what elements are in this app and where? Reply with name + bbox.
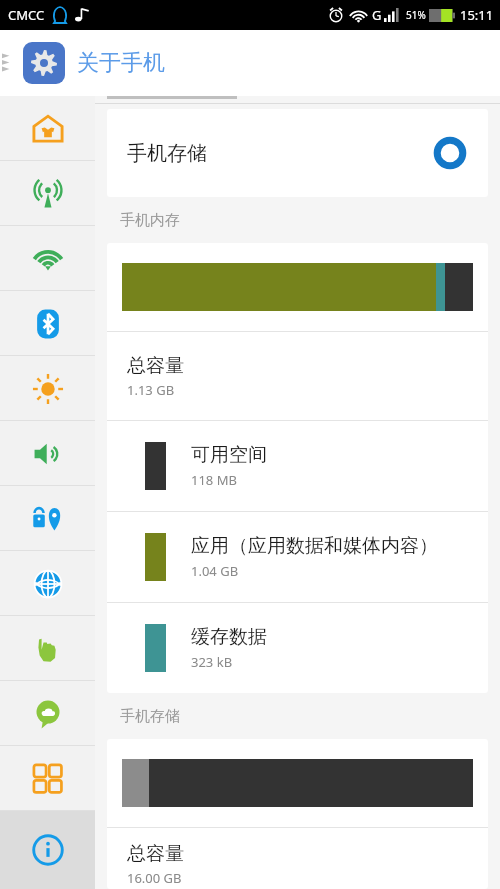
staticText: 16.00 GB (127, 869, 182, 887)
staticText: 15:11 (460, 6, 494, 24)
button[interactable]: 缓存数据 (107, 603, 488, 693)
button[interactable]: Language (0, 551, 95, 616)
staticText: CMCC (8, 6, 45, 24)
staticText: 323 kB (191, 653, 233, 671)
button[interactable]: Apps (0, 746, 95, 811)
button[interactable]: 应用（应用数据和媒体内容） (107, 512, 488, 602)
staticText: 关于手机 (77, 49, 165, 77)
staticText: 总容量 (127, 842, 184, 866)
button[interactable]: Sound (0, 421, 95, 486)
button[interactable]: 手机存储 (107, 109, 488, 197)
staticText: 1.04 GB (191, 562, 239, 580)
button[interactable]: Bluetooth (0, 291, 95, 356)
button[interactable]: Home (0, 96, 95, 161)
button[interactable]: Mobile network (0, 161, 95, 226)
button[interactable]: Settings (23, 42, 65, 84)
button[interactable]: 总容量 (107, 828, 488, 889)
staticText: 缓存数据 (191, 625, 267, 649)
staticText: 51% (406, 8, 426, 22)
staticText: 1.13 GB (127, 381, 175, 399)
button[interactable]: Cloud (0, 681, 95, 746)
staticText: 可用空间 (191, 443, 267, 467)
staticText: 手机内存 (120, 211, 180, 230)
button[interactable]: About phone (0, 811, 95, 889)
staticText: G (372, 6, 382, 24)
button[interactable]: 可用空间 (107, 421, 488, 511)
button[interactable]: Security and location (0, 486, 95, 551)
button[interactable]: Display (0, 356, 95, 421)
staticText: 118 MB (191, 471, 237, 489)
staticText: 应用（应用数据和媒体内容） (191, 534, 438, 558)
button[interactable]: 总容量 (107, 332, 488, 420)
button[interactable]: Wi-Fi (0, 226, 95, 291)
button[interactable]: Gestures (0, 616, 95, 681)
staticText: 手机存储 (127, 141, 207, 166)
staticText: 手机存储 (120, 707, 180, 726)
staticText: 总容量 (127, 354, 184, 378)
